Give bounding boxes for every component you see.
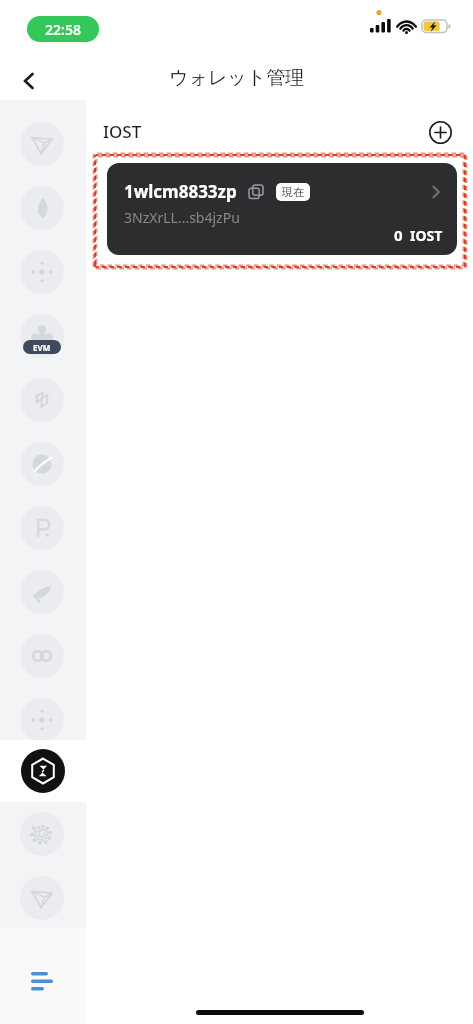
button[interactable]: Chain 2 xyxy=(20,186,64,230)
button[interactable]: Chain 7 xyxy=(20,506,64,550)
button[interactable]: Manage list xyxy=(20,960,64,1004)
staticText: EVM xyxy=(33,342,51,353)
button[interactable]: Copy address xyxy=(246,182,266,202)
button[interactable]: 1wlcm8833zp xyxy=(107,163,457,255)
button[interactable]: Chain 1 xyxy=(20,122,64,166)
staticText: 現在 xyxy=(282,185,304,199)
button[interactable]: Chain 5 xyxy=(20,378,64,422)
staticText: 3NzXrLL...sb4jzPu xyxy=(124,208,240,227)
staticText: 1wlcm8833zp xyxy=(124,180,237,203)
staticText: 22:58 xyxy=(45,20,81,39)
button[interactable]: Add wallet xyxy=(420,112,460,152)
button[interactable]: Chain 12 xyxy=(20,876,64,920)
button[interactable]: Chain 3 xyxy=(20,250,64,294)
button[interactable]: Chain 10 xyxy=(20,698,64,742)
button[interactable]: Chain 11 xyxy=(20,812,64,856)
button[interactable]: Chain 6 xyxy=(20,442,64,486)
button[interactable]: Back xyxy=(6,58,52,104)
staticText: IOST xyxy=(410,226,443,245)
button[interactable]: IOST xyxy=(0,740,86,802)
button[interactable]: Chain 4 xyxy=(20,314,64,358)
button[interactable]: Chain 8 xyxy=(20,570,64,614)
button[interactable]: Chain 9 xyxy=(20,634,64,678)
staticText: IOST xyxy=(103,120,142,143)
staticText: 0 xyxy=(394,225,403,245)
button[interactable]: Chain 13 xyxy=(20,938,64,982)
staticText: ウォレット管理 xyxy=(169,66,305,90)
